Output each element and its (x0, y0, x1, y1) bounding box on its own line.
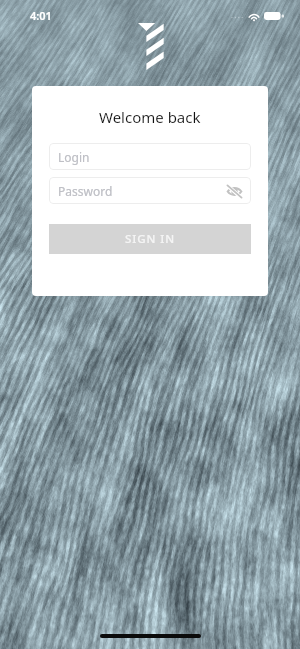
button[interactable]: Password (49, 177, 251, 204)
staticText: Password (58, 183, 113, 199)
staticText: Welcome back (99, 107, 201, 127)
button[interactable]: Show password (226, 183, 242, 199)
staticText: SIGN IN (125, 231, 175, 247)
staticText: Login (58, 149, 90, 165)
staticText: 4:01 (30, 8, 52, 23)
button[interactable]: SIGN IN (49, 224, 251, 254)
button[interactable]: Login (49, 143, 251, 170)
